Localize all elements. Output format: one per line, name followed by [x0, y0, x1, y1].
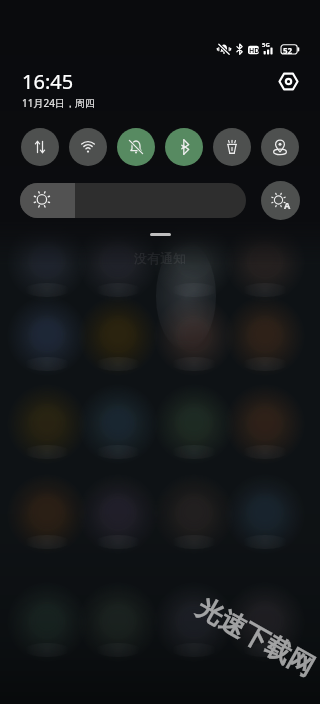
button[interactable]: Brightness — [20, 183, 246, 218]
staticText: 11月24日，周四 — [22, 96, 95, 110]
button[interactable]: Bluetooth — [165, 128, 203, 166]
staticText: 光速下载网 — [191, 591, 320, 684]
button[interactable]: Flashlight — [213, 128, 251, 166]
button[interactable]: Location — [261, 128, 299, 166]
staticText: HD — [249, 46, 260, 56]
button[interactable]: Auto brightness — [261, 181, 300, 220]
button[interactable]: Mobile data — [21, 128, 59, 166]
button[interactable]: Wi-Fi — [69, 128, 107, 166]
button[interactable]: Settings — [270, 63, 306, 99]
staticText: 16:45 — [22, 68, 74, 95]
staticText: 52 — [283, 45, 293, 56]
button[interactable]: Silent mode — [117, 128, 155, 166]
staticText: 5G — [262, 41, 270, 49]
staticText: A — [284, 199, 291, 211]
staticText: 没有通知 — [134, 250, 186, 266]
